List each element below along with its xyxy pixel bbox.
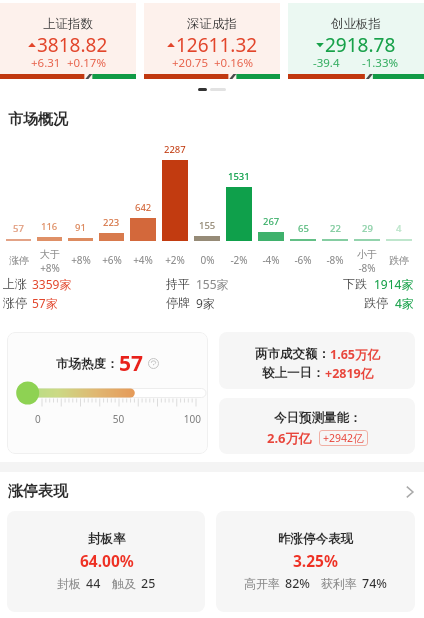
- staticText: -2%: [230, 253, 248, 267]
- staticText: -4%: [262, 253, 280, 267]
- staticText: +2942亿: [323, 431, 364, 445]
- staticText: 100: [146, 412, 201, 426]
- staticText: 223: [103, 216, 120, 229]
- button[interactable]: 昨涨停今表现: [216, 511, 415, 612]
- staticText: 停牌: [166, 295, 190, 310]
- button[interactable]: 创业板指: [288, 3, 424, 79]
- staticText: 642: [135, 201, 152, 214]
- staticText: +2%: [165, 253, 185, 267]
- staticText: 116: [41, 220, 58, 233]
- staticText: 155家: [196, 276, 229, 292]
- staticText: 1914家: [374, 276, 414, 292]
- staticText: 82%: [285, 575, 310, 592]
- staticText: 0%: [200, 253, 215, 267]
- staticText: 3818.82: [37, 32, 108, 58]
- staticText: +8%: [71, 253, 91, 267]
- staticText: 22: [330, 222, 341, 235]
- button[interactable]: 涨停表现: [8, 482, 418, 501]
- staticText: 今日预测量能：: [274, 410, 362, 426]
- staticText: 跌停: [364, 295, 388, 310]
- button[interactable]: 深证成指: [144, 3, 280, 79]
- staticText: 1531: [228, 170, 250, 183]
- staticText: 市场概况: [8, 110, 68, 129]
- staticText: +20.75: [172, 55, 208, 71]
- staticText: 25: [141, 575, 156, 592]
- staticText: 29: [362, 222, 373, 235]
- staticText: 封板: [57, 576, 81, 591]
- staticText: 12611.32: [176, 32, 258, 58]
- staticText: 涨停表现: [8, 482, 68, 501]
- staticText: 高开率: [244, 576, 280, 591]
- staticText: +6%: [102, 253, 122, 267]
- staticText: 2918.78: [325, 32, 396, 58]
- button[interactable]: 上证指数: [0, 3, 136, 79]
- staticText: 267: [263, 215, 280, 228]
- staticText: 较上一日：: [262, 365, 325, 381]
- staticText: 57: [119, 349, 144, 378]
- button[interactable]: 封板率: [7, 511, 205, 612]
- staticText: 65: [298, 222, 309, 235]
- staticText: 0: [35, 412, 91, 426]
- staticText: 上涨: [3, 276, 27, 291]
- staticText: 跌停: [389, 254, 409, 267]
- staticText: 44: [86, 575, 101, 592]
- staticText: 昨涨停今表现: [278, 531, 353, 547]
- staticText: 64.00%: [80, 550, 134, 571]
- staticText: 57家: [32, 295, 58, 311]
- button[interactable]: 今日预测量能：: [219, 398, 415, 454]
- staticText: 91: [75, 221, 86, 234]
- staticText: +8%: [40, 261, 60, 272]
- staticText: 获利率: [321, 576, 357, 591]
- staticText: -8%: [326, 253, 344, 267]
- staticText: 74%: [362, 575, 387, 592]
- staticText: 9家: [196, 295, 215, 311]
- button[interactable]: 两市成交额：: [219, 332, 415, 389]
- staticText: 涨停: [3, 295, 27, 310]
- staticText: 155: [199, 219, 216, 232]
- other: 查看更多: [402, 484, 418, 500]
- staticText: 2287: [164, 143, 186, 156]
- staticText: 持平: [166, 276, 190, 291]
- staticText: +4%: [133, 253, 153, 267]
- staticText: 50: [91, 412, 146, 426]
- staticText: 小于: [357, 248, 377, 261]
- staticText: 封板率: [88, 531, 126, 547]
- staticText: 市场热度：: [56, 356, 119, 372]
- other: 说明: [148, 358, 159, 369]
- staticText: 2.6万亿: [267, 429, 312, 447]
- staticText: 57: [13, 222, 24, 235]
- staticText: -6%: [294, 253, 312, 267]
- staticText: -8%: [358, 261, 376, 272]
- staticText: 下跌: [343, 276, 367, 291]
- staticText: +2819亿: [325, 365, 374, 382]
- staticText: 3359家: [32, 276, 72, 292]
- staticText: -39.4: [313, 55, 340, 71]
- staticText: 3.25%: [293, 550, 338, 571]
- staticText: +0.16%: [214, 55, 253, 71]
- staticText: -1.33%: [362, 55, 399, 71]
- staticText: 大于: [40, 248, 60, 261]
- staticText: +6.31: [31, 55, 61, 71]
- staticText: 涨停: [9, 254, 29, 267]
- staticText: 创业板指: [331, 16, 381, 32]
- staticText: 4家: [395, 295, 414, 311]
- staticText: 两市成交额：: [255, 346, 330, 362]
- staticText: +0.17%: [67, 55, 106, 71]
- staticText: 触及: [112, 576, 136, 591]
- button[interactable]: 市场热度：: [7, 332, 208, 454]
- staticText: 4: [396, 222, 402, 235]
- staticText: 深证成指: [187, 16, 237, 32]
- staticText: 上证指数: [43, 16, 93, 32]
- staticText: 1.65万亿: [330, 346, 380, 363]
